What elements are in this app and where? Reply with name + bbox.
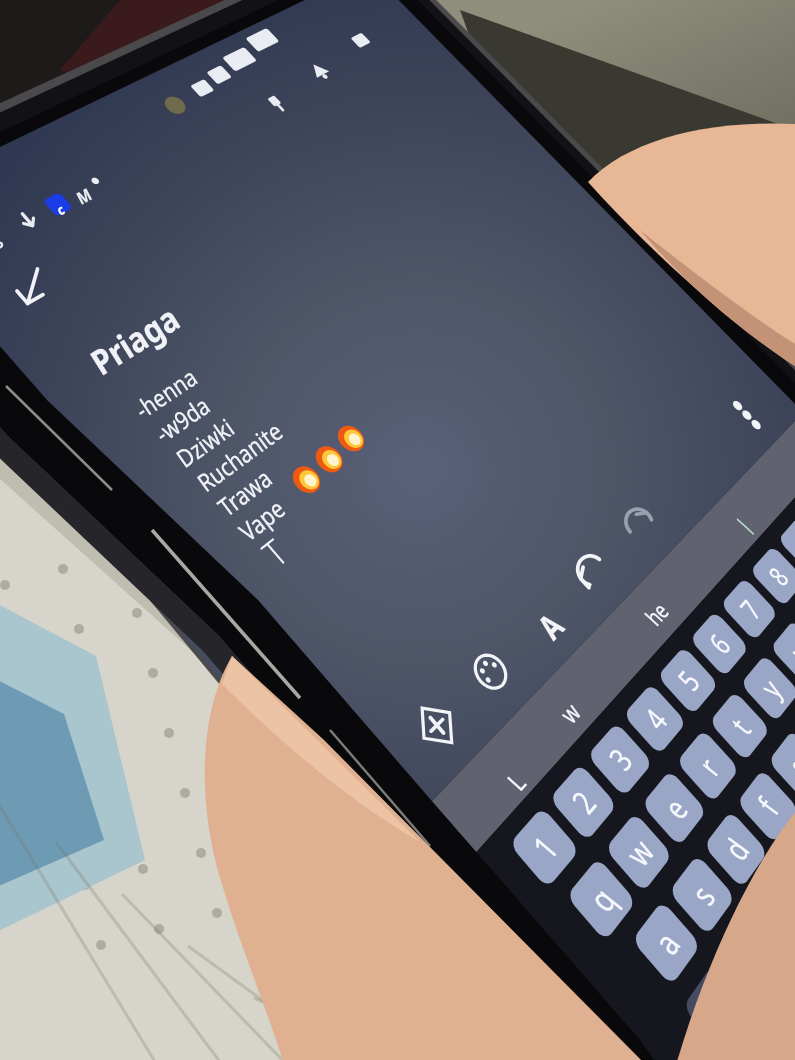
button[interactable]: Hand holding phone showing note editor bbox=[0, 0, 795, 1060]
